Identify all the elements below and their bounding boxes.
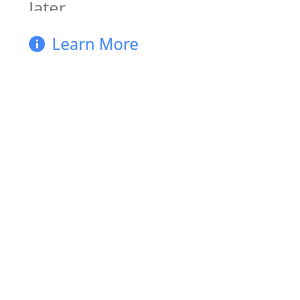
button[interactable]: Information [29, 33, 147, 55]
staticText: later. [29, 0, 68, 11]
staticText: Learn More [52, 33, 139, 55]
other: Information [29, 36, 45, 52]
